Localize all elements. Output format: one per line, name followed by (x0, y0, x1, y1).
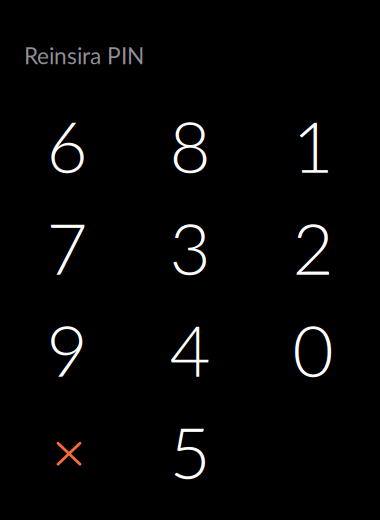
staticText: 4 (169, 307, 210, 392)
staticText: 1 (292, 103, 333, 188)
staticText: 8 (169, 103, 210, 188)
button[interactable]: 4 (128, 298, 251, 400)
button[interactable]: 8 (128, 94, 251, 196)
staticText: 5 (169, 409, 210, 494)
staticText: 3 (169, 205, 210, 290)
staticText: 2 (292, 205, 333, 290)
button[interactable]: 7 (5, 196, 128, 298)
button[interactable]: 2 (251, 196, 374, 298)
button[interactable]: Delete (5, 400, 128, 502)
button[interactable]: 0 (251, 298, 374, 400)
staticText: 9 (46, 307, 87, 392)
button[interactable]: 6 (5, 94, 128, 196)
staticText: Reinsira PIN (24, 42, 144, 69)
staticText: 0 (292, 307, 333, 392)
button[interactable]: 5 (128, 400, 251, 502)
staticText: 7 (46, 205, 87, 290)
button[interactable]: 9 (5, 298, 128, 400)
button[interactable]: 1 (251, 94, 374, 196)
staticText: 6 (46, 103, 87, 188)
button[interactable]: 3 (128, 196, 251, 298)
